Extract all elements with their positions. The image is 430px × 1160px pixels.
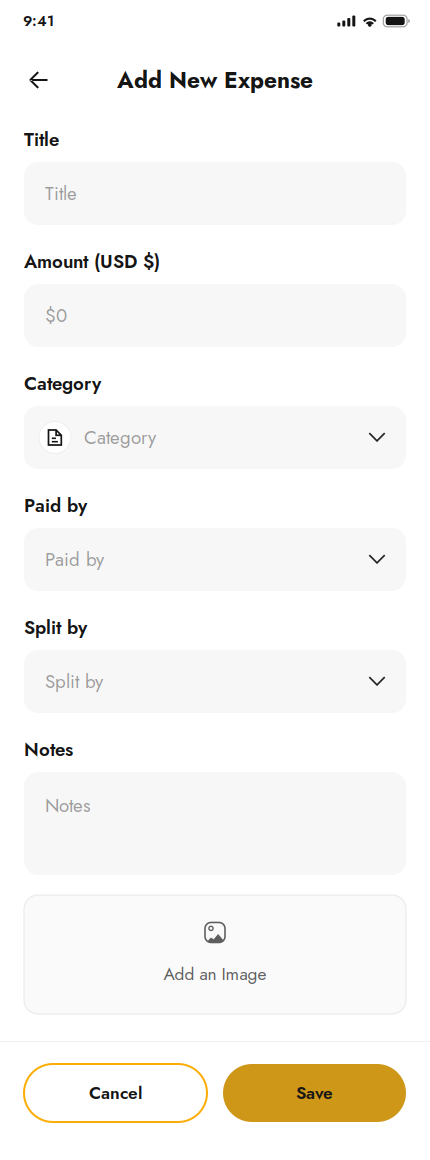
staticText: Add an Image [163,961,266,986]
staticText: Title [45,180,77,207]
button[interactable]: $0 [24,284,406,347]
button[interactable]: Title [24,162,406,225]
button[interactable]: Cancel [24,1064,207,1122]
button[interactable]: Back [16,58,60,102]
staticText: $0 [45,302,67,329]
staticText: Split by [45,668,103,695]
button[interactable]: Notes [24,772,406,875]
staticText: Split by [24,614,87,641]
button[interactable]: Paid by [24,528,406,591]
staticText: Title [24,126,59,153]
staticText: Paid by [45,546,104,573]
staticText: 9:41 [23,10,54,32]
staticText: Add New Expense [117,64,313,96]
staticText: Amount (USD $) [24,248,160,275]
button[interactable]: Save [223,1064,406,1122]
staticText: Paid by [24,492,87,519]
staticText: Save [296,1080,333,1105]
button[interactable]: Split by [24,650,406,713]
staticText: Category [24,370,101,397]
staticText: Notes [45,792,91,819]
button[interactable]: Add an Image [24,895,406,1014]
staticText: Notes [24,736,73,763]
button[interactable]: Category [24,406,406,469]
staticText: Cancel [89,1080,142,1105]
staticText: Category [84,424,156,451]
